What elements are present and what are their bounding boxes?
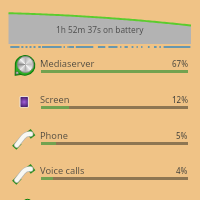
button[interactable]: Android OS (0, 195, 200, 200)
other: Phone (14, 128, 34, 148)
staticText: 12% (172, 94, 188, 105)
staticText: Phone (40, 129, 68, 142)
other: Screen (14, 92, 34, 112)
staticText: 5% (176, 130, 188, 141)
staticText: 67% (172, 58, 188, 69)
button[interactable]: Mediaserver (0, 52, 200, 88)
other: Mediaserver (14, 56, 34, 76)
staticText: Voice calls (40, 164, 85, 177)
staticText: Screen (40, 93, 70, 106)
staticText: Mediaserver (40, 57, 95, 70)
staticText: 4% (176, 165, 188, 176)
button[interactable]: Screen (0, 88, 200, 124)
other: Phone (14, 163, 34, 183)
button[interactable]: Phone (0, 124, 200, 160)
staticText: 1h 52m 37s on battery (56, 24, 144, 35)
button[interactable]: Phone (0, 159, 200, 195)
